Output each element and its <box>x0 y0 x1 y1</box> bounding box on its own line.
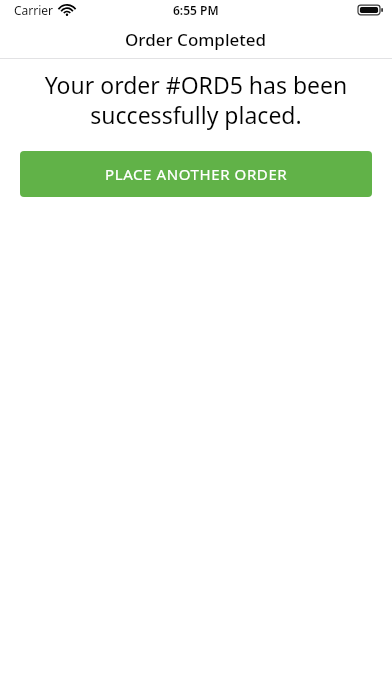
staticText: Your order #ORD5 has been successfully p… <box>20 69 372 130</box>
staticText: 6:55 PM <box>173 2 219 18</box>
staticText: PLACE ANOTHER ORDER <box>105 164 288 184</box>
button[interactable]: PLACE ANOTHER ORDER <box>20 151 372 197</box>
staticText: Carrier <box>14 2 54 18</box>
staticText: Order Completed <box>125 28 267 51</box>
